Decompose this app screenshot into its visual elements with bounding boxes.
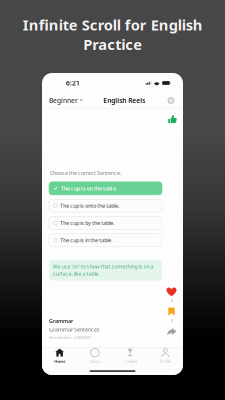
button[interactable]: The cup is on the table. xyxy=(49,182,162,195)
staticText: Choose the correct Sentence. xyxy=(50,169,121,176)
button[interactable]: Like xyxy=(166,286,177,303)
staticText: The cup is in the table. xyxy=(60,237,112,244)
staticText: 6:21 xyxy=(66,79,80,87)
staticText: Home xyxy=(54,358,65,364)
staticText: Beginner xyxy=(49,96,78,105)
button[interactable]: Settings xyxy=(166,95,176,105)
staticText: The cup is by the table. xyxy=(60,219,114,227)
staticText: Contest xyxy=(124,358,137,364)
button[interactable]: The cup is in the table. xyxy=(49,234,162,247)
button[interactable]: Oasis xyxy=(77,345,112,367)
button[interactable]: Profile xyxy=(148,345,183,367)
staticText: We use 'on' to show that something is on… xyxy=(53,263,154,277)
button[interactable]: Beginner xyxy=(49,94,83,107)
staticText: Profile xyxy=(160,358,171,364)
staticText: The cup is on the table. xyxy=(61,185,117,192)
staticText: The cup is onto the table. xyxy=(60,202,119,209)
staticText: Grammar xyxy=(49,317,73,324)
staticText: English Reels xyxy=(103,96,145,105)
button[interactable]: Contest xyxy=(112,345,148,367)
staticText: Reel Identifier: #0082850 xyxy=(49,335,91,340)
staticText: Oasis xyxy=(90,358,100,364)
button[interactable]: The cup is by the table. xyxy=(49,216,162,229)
staticText: 2 xyxy=(170,317,172,323)
button[interactable]: Share xyxy=(166,326,177,338)
button[interactable]: The cup is onto the table. xyxy=(49,199,162,212)
staticText: Infinite Scroll for English Practice xyxy=(22,15,202,54)
button[interactable]: Save xyxy=(166,306,177,323)
button[interactable]: Home xyxy=(42,345,77,367)
staticText: Grammar Sentences xyxy=(49,326,100,333)
staticText: 5 xyxy=(170,298,172,303)
